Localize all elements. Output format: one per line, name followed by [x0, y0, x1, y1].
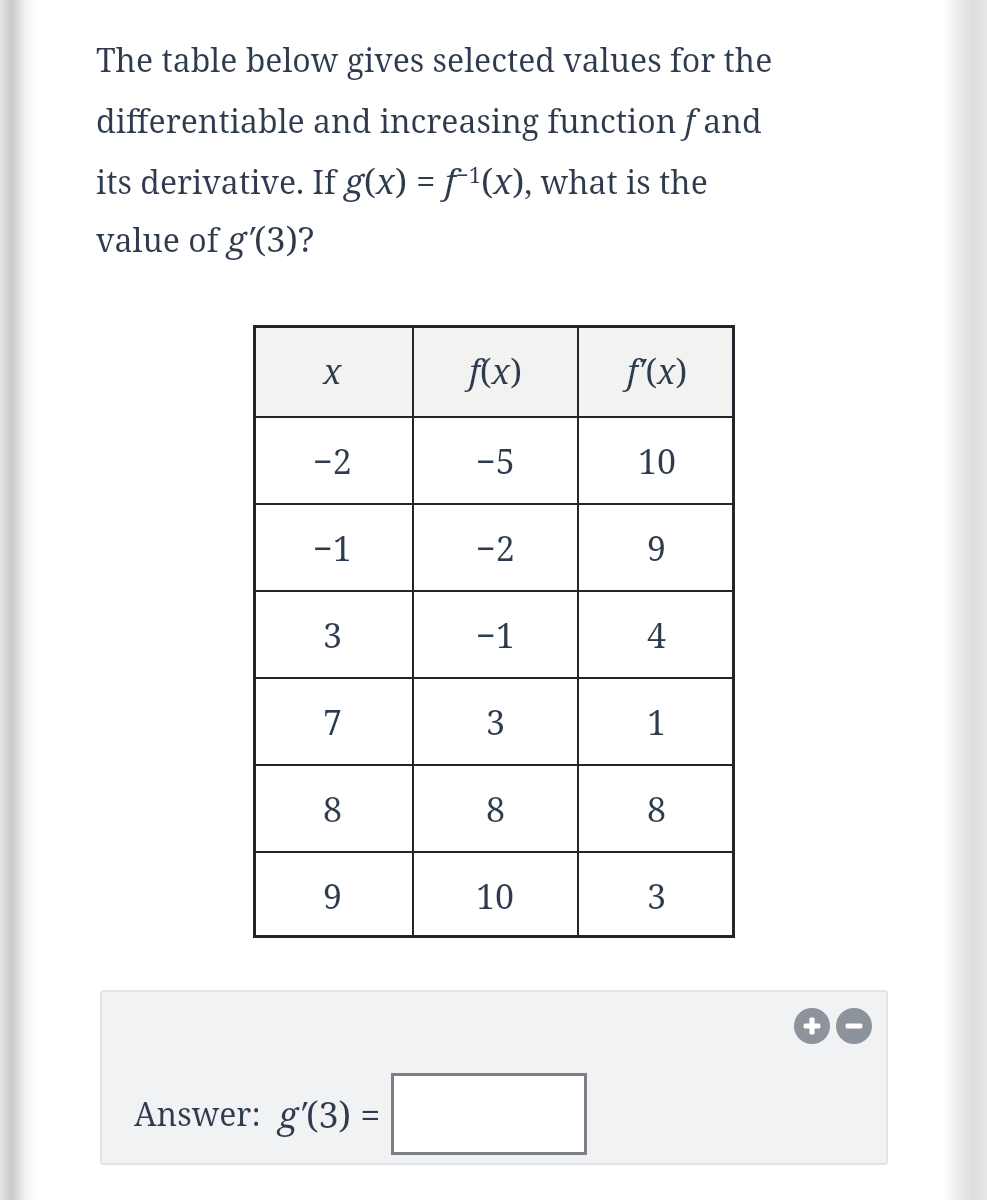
staticText: x: [323, 348, 342, 394]
staticText: −2: [313, 438, 352, 484]
staticText: f(x): [469, 348, 522, 394]
button[interactable]: Zoom in: [794, 1008, 830, 1044]
staticText: −5: [476, 438, 515, 484]
staticText: 10: [476, 873, 515, 919]
staticText: −2: [476, 525, 515, 571]
staticText: 4: [647, 612, 667, 658]
staticText: The table below gives selected values fo…: [96, 38, 773, 82]
button[interactable]: Zoom out: [836, 1008, 872, 1044]
staticText: −1: [313, 525, 352, 571]
staticText: 9: [647, 525, 667, 571]
staticText: 8: [323, 786, 343, 832]
staticText: f′(x): [627, 348, 688, 394]
staticText: 3: [647, 873, 667, 919]
button[interactable]: [391, 1073, 587, 1155]
staticText: 8: [486, 786, 506, 832]
staticText: g′(3) =: [278, 1090, 381, 1139]
staticText: 9: [323, 873, 343, 919]
staticText: −1: [476, 612, 515, 658]
staticText: Answer:: [134, 1092, 278, 1136]
staticText: 3: [486, 699, 506, 745]
staticText: value of g′(3)?: [96, 215, 315, 263]
staticText: 3: [323, 612, 343, 658]
staticText: its derivative. If g(x) = f−1(x), what i…: [96, 157, 708, 205]
staticText: 7: [323, 699, 343, 745]
staticText: 10: [638, 438, 677, 484]
staticText: 8: [647, 786, 667, 832]
staticText: 1: [647, 699, 667, 745]
staticText: differentiable and increasing function f…: [96, 99, 762, 143]
